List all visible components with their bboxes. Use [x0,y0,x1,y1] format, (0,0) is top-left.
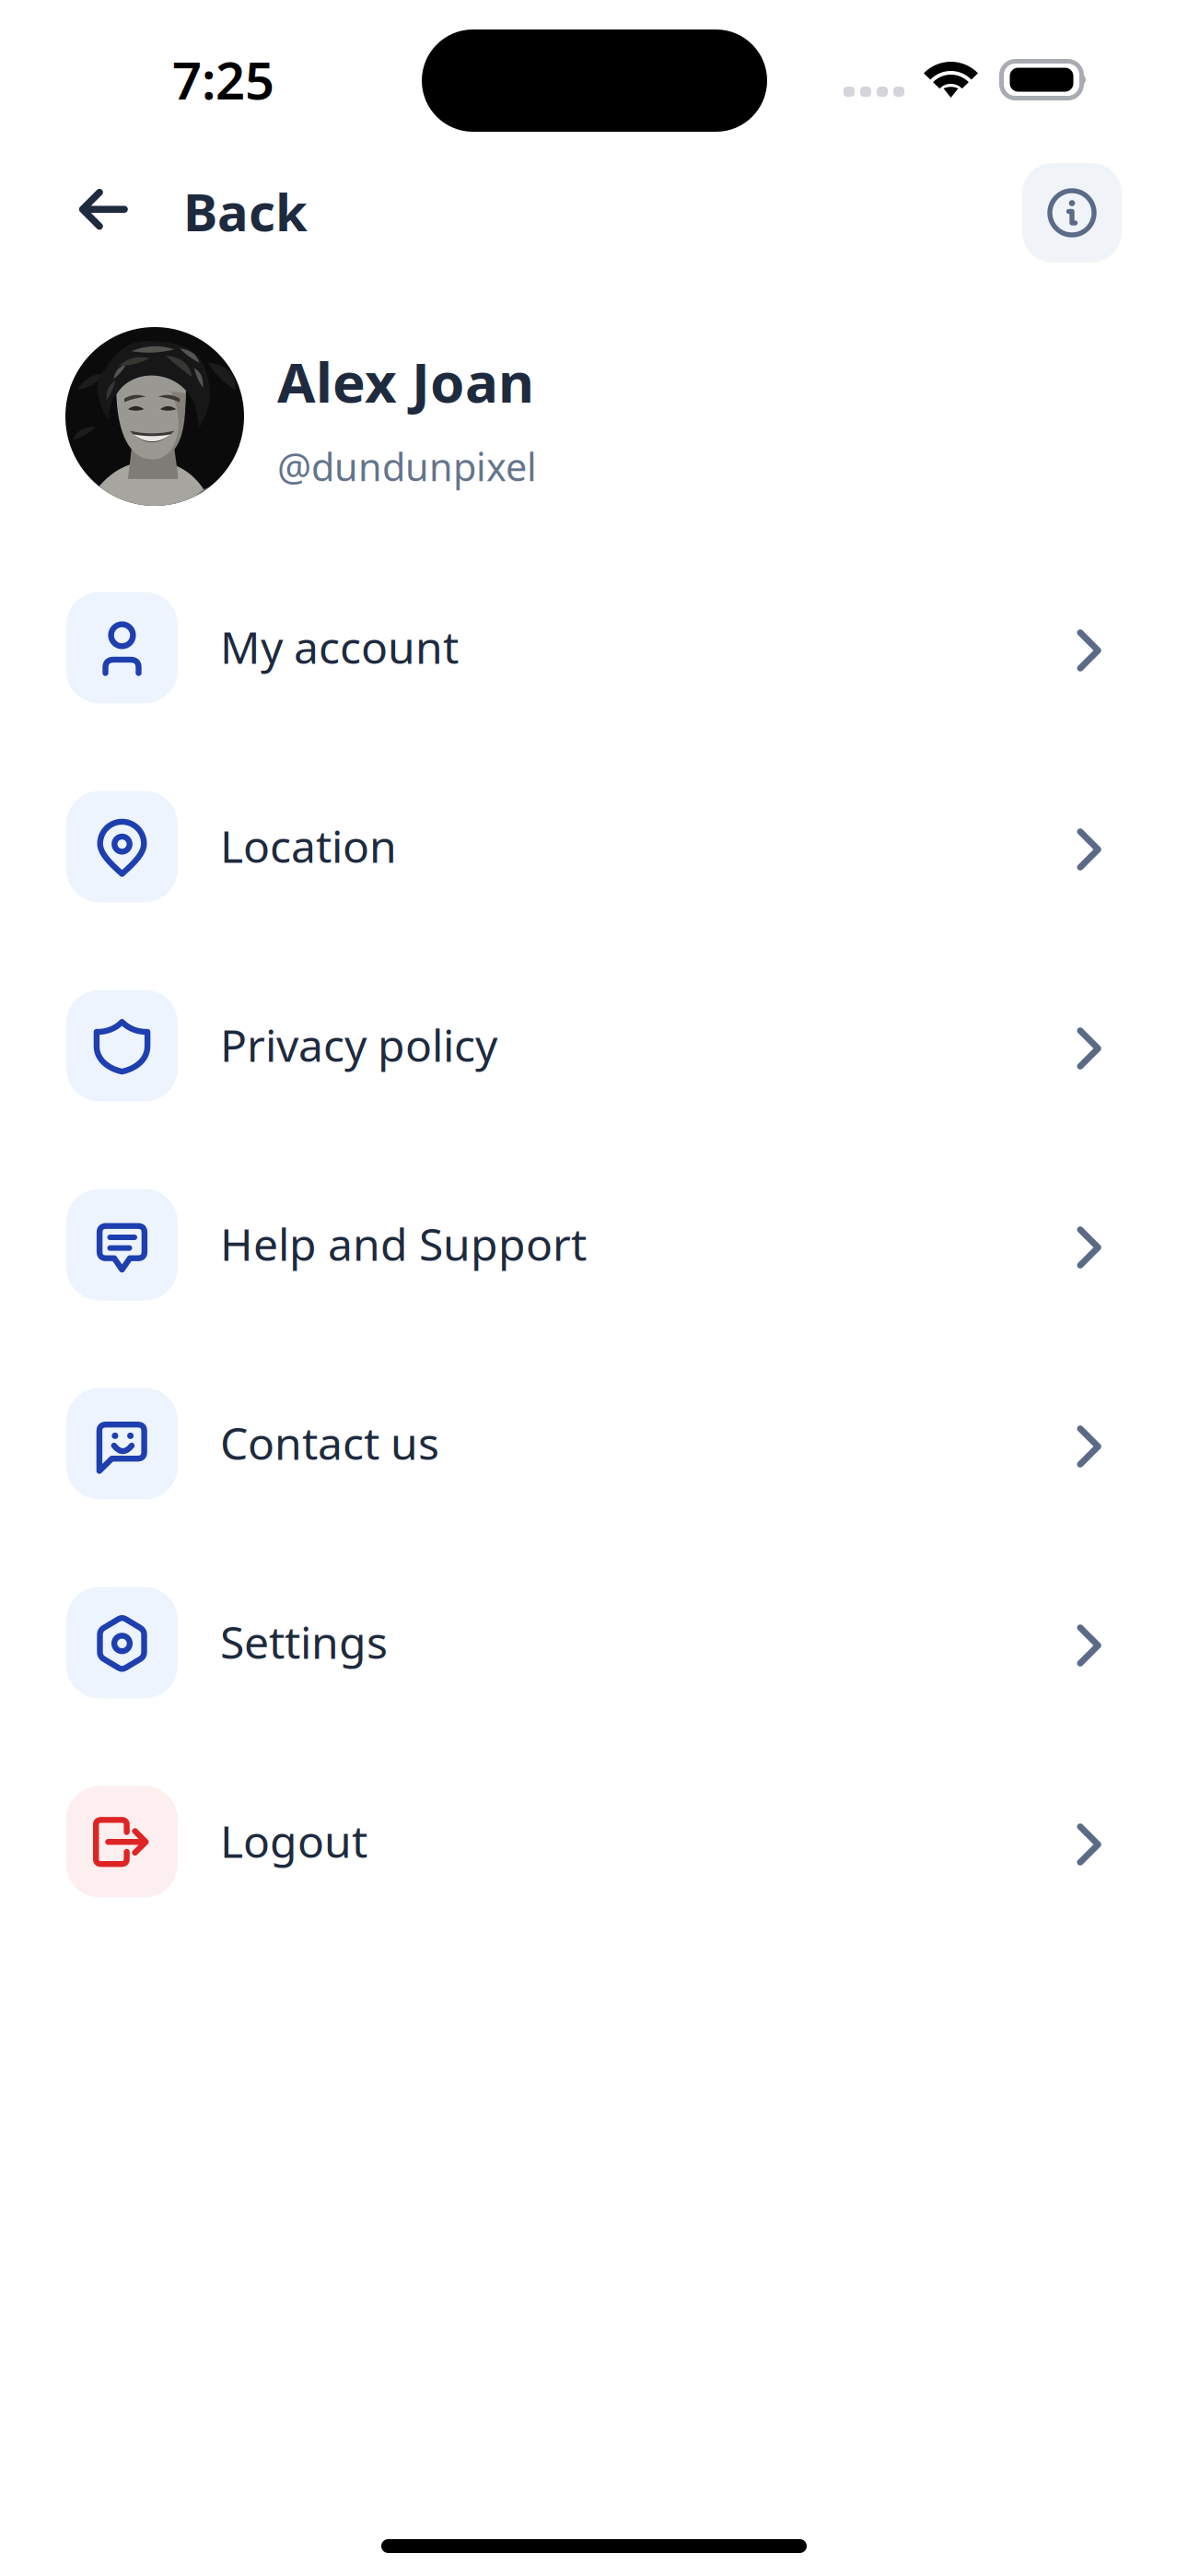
button[interactable]: Information [1022,163,1122,263]
staticText: Privacy policy [220,1015,497,1074]
staticText: My account [220,617,459,676]
staticText: Logout [220,1811,367,1870]
staticText: Alex Joan [277,345,534,418]
staticText: Back [183,177,308,245]
button[interactable]: Location [0,747,1188,946]
staticText: Contact us [220,1413,439,1472]
button[interactable]: Contact us [0,1344,1188,1543]
staticText: Help and Support [220,1214,587,1273]
button[interactable]: Settings [0,1543,1188,1742]
staticText: 7:25 [172,45,274,114]
staticText: @dundunpixel [277,441,537,492]
button[interactable]: Help and Support [0,1145,1188,1344]
button[interactable]: Logout [0,1742,1188,1941]
button[interactable]: Privacy policy [0,946,1188,1145]
button[interactable]: Alex Joan [65,327,1187,506]
staticText: Settings [220,1612,388,1671]
button[interactable]: My account [0,548,1188,747]
staticText: Location [220,816,397,875]
button[interactable]: Back [52,167,334,280]
